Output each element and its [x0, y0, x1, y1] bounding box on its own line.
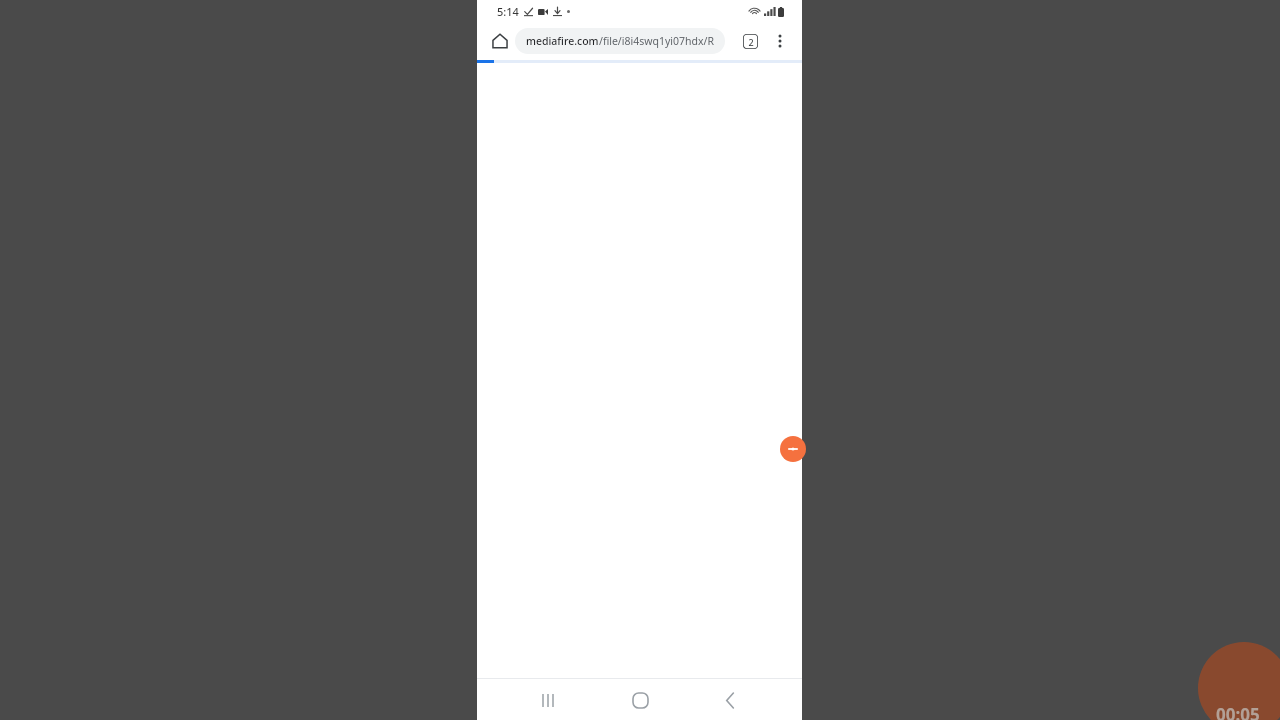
- staticText: mediafire.com: [526, 34, 599, 48]
- button[interactable]: Home: [485, 26, 515, 56]
- button[interactable]: More options: [765, 26, 795, 56]
- staticText: 2: [748, 36, 754, 48]
- staticText: /file/i8i4swq1yi07hdx/R: [599, 34, 714, 48]
- button[interactable]: mediafire.com: [515, 28, 725, 54]
- staticText: 5:14: [497, 4, 519, 19]
- button[interactable]: Tabs, 2 open: [735, 26, 765, 56]
- button[interactable]: Home: [624, 684, 656, 716]
- button[interactable]: Floating action: [780, 436, 806, 462]
- button[interactable]: Recent apps: [532, 684, 564, 716]
- staticText: 00:05: [1216, 703, 1260, 720]
- button[interactable]: Recording timer: [1198, 642, 1280, 720]
- button[interactable]: Back: [714, 684, 746, 716]
